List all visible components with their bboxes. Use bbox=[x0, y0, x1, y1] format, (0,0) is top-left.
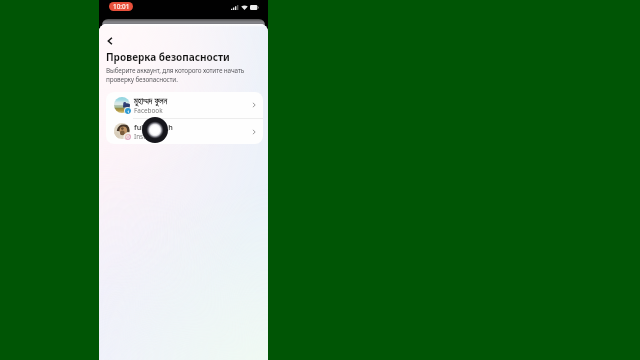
button[interactable]: fullname_h bbox=[106, 119, 263, 144]
button[interactable]: মুহাম্মদ ফুলন bbox=[106, 92, 263, 118]
button[interactable]: Назад bbox=[102, 33, 118, 49]
staticText: Проверка безопасности bbox=[106, 50, 230, 64]
staticText: Выберите аккаунт, для которого хотите на… bbox=[106, 66, 245, 84]
staticText: Instagram bbox=[134, 132, 166, 141]
staticText: মুহাম্মদ ফুলন bbox=[134, 95, 168, 106]
staticText: 10:01 bbox=[113, 2, 130, 11]
staticText: Facebook bbox=[134, 106, 163, 115]
staticText: fullname_h bbox=[134, 122, 173, 132]
